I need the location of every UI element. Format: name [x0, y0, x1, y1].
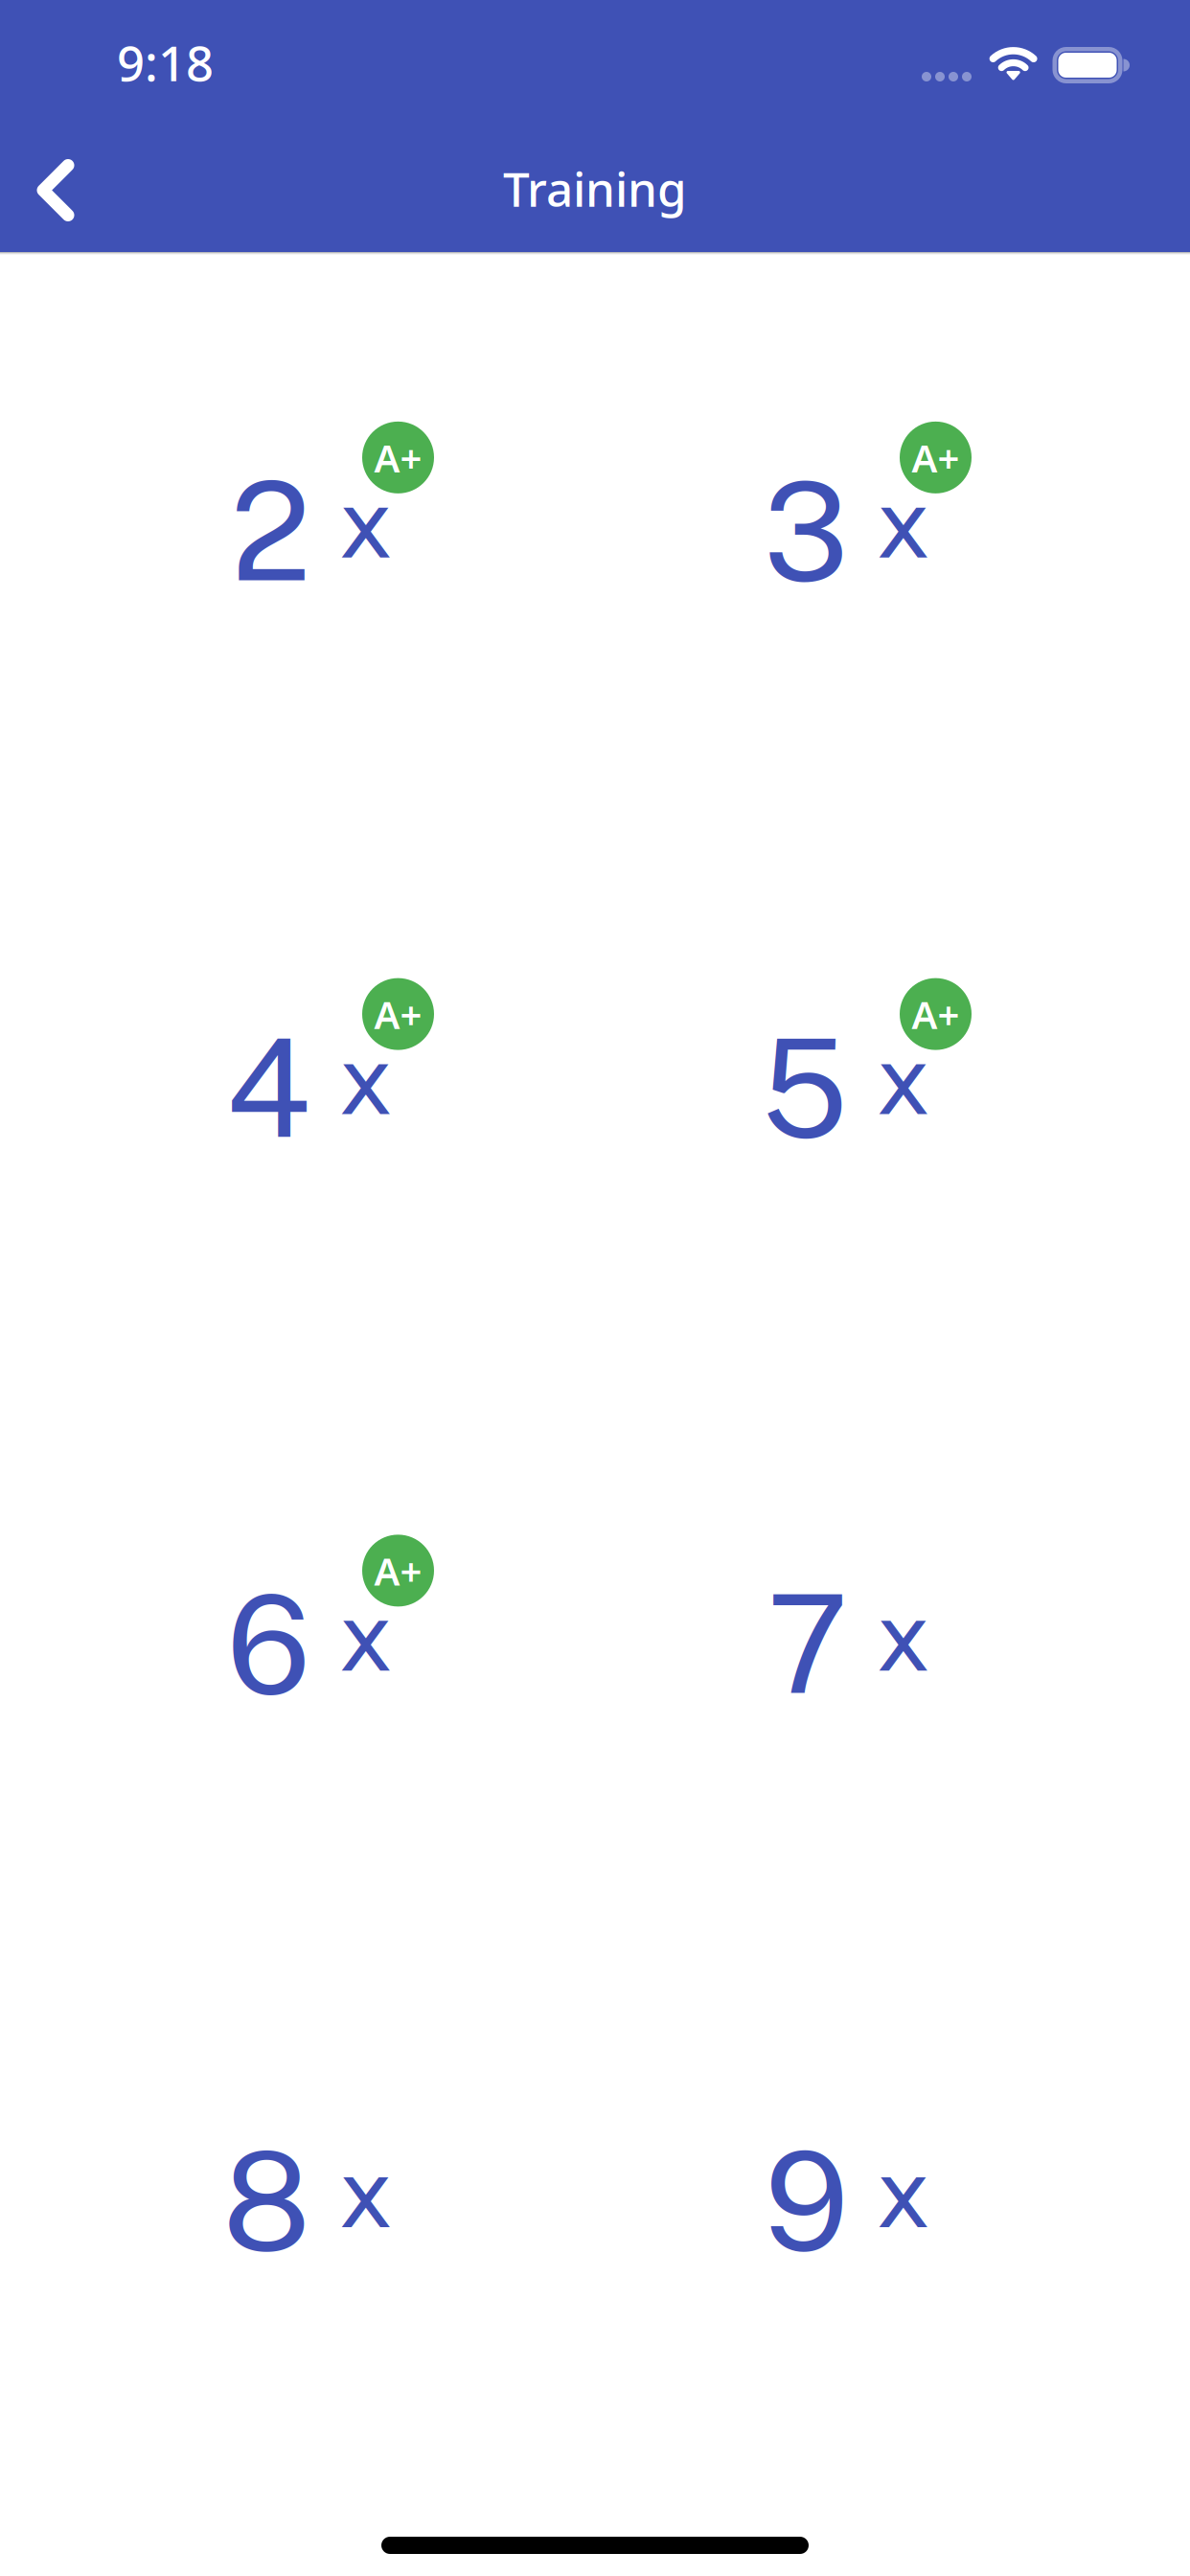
- staticText: A+: [374, 1544, 422, 1597]
- button[interactable]: 9 times table: [595, 1922, 1133, 2478]
- button[interactable]: 5 times table, grade A plus: [595, 809, 1133, 1365]
- staticText: 8: [223, 2121, 311, 2281]
- staticText: Training: [503, 156, 687, 221]
- staticText: 9: [764, 2121, 848, 2281]
- staticText: 9:18: [117, 29, 214, 95]
- button[interactable]: 7 times table: [595, 1365, 1133, 1922]
- staticText: A+: [374, 988, 422, 1040]
- staticText: A+: [912, 431, 960, 484]
- staticText: A+: [912, 988, 960, 1040]
- staticText: 7: [767, 1565, 848, 1724]
- button[interactable]: 3 times table, grade A plus: [595, 252, 1133, 809]
- staticText: 6: [227, 1565, 311, 1724]
- staticText: x: [876, 466, 930, 579]
- staticText: x: [339, 1579, 392, 1692]
- button[interactable]: Back: [0, 127, 109, 240]
- button[interactable]: 6 times table, grade A plus: [57, 1365, 595, 1922]
- staticText: 4: [226, 1008, 311, 1167]
- staticText: x: [876, 2136, 930, 2249]
- staticText: x: [339, 1023, 392, 1136]
- staticText: x: [339, 466, 392, 579]
- staticText: x: [876, 1579, 930, 1692]
- staticText: 5: [761, 1008, 848, 1167]
- button[interactable]: 8 times table: [57, 1922, 595, 2478]
- button[interactable]: 2 times table, grade A plus: [57, 252, 595, 809]
- staticText: x: [876, 1023, 930, 1136]
- staticText: x: [339, 2136, 392, 2249]
- staticText: A+: [374, 431, 422, 484]
- staticText: 2: [230, 452, 311, 611]
- staticText: 3: [763, 452, 848, 611]
- button[interactable]: 4 times table, grade A plus: [57, 809, 595, 1365]
